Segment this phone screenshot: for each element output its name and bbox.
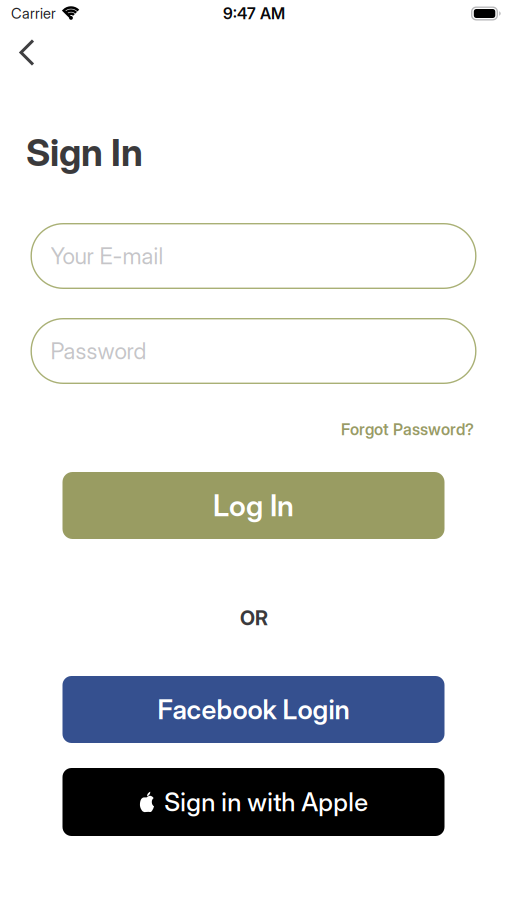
button[interactable]: Password bbox=[30, 318, 476, 384]
staticText: 9:47 AM bbox=[223, 4, 285, 23]
button[interactable]: Back bbox=[5, 30, 49, 74]
staticText: Forgot Password? bbox=[341, 420, 474, 439]
button[interactable]: Log In bbox=[62, 472, 444, 539]
button[interactable]: Forgot Password? bbox=[341, 420, 474, 439]
staticText: Carrier bbox=[11, 5, 56, 22]
button[interactable]: Facebook Login bbox=[62, 676, 444, 743]
button[interactable]: Sign in with Apple bbox=[62, 768, 444, 836]
staticText: Your E-mail bbox=[50, 243, 163, 269]
staticText: Sign In bbox=[26, 130, 143, 174]
staticText: Log In bbox=[213, 488, 294, 523]
staticText: Facebook Login bbox=[157, 694, 349, 725]
button[interactable]: Your E-mail bbox=[30, 223, 476, 289]
staticText: Password bbox=[50, 338, 146, 364]
staticText: OR bbox=[240, 606, 268, 630]
staticText: Sign in with Apple bbox=[164, 787, 368, 817]
